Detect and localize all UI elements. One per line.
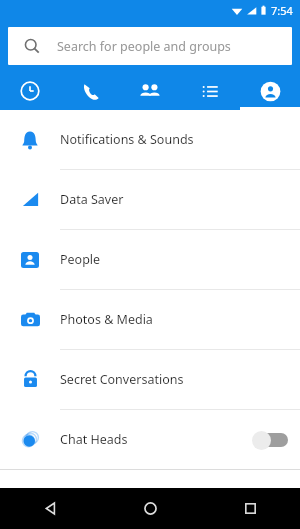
- button[interactable]: Photos & Media: [0, 290, 300, 349]
- button[interactable]: Notifications & Sounds: [0, 110, 300, 169]
- staticText: Search for people and groups: [57, 38, 231, 55]
- staticText: Chat Heads: [60, 431, 128, 448]
- staticText: Notifications & Sounds: [60, 131, 194, 148]
- button[interactable]: Recent: [0, 72, 60, 110]
- staticText: Data Saver: [60, 191, 124, 208]
- staticText: Photos & Media: [60, 311, 153, 328]
- staticText: 7:54: [271, 3, 293, 18]
- button[interactable]: Chat Heads: [0, 410, 300, 469]
- button[interactable]: Search for people and groups: [8, 27, 292, 65]
- button[interactable]: People: [0, 230, 300, 289]
- staticText: Secret Conversations: [60, 371, 184, 388]
- button[interactable]: Profile: [240, 72, 300, 110]
- button[interactable]: Calls: [60, 72, 120, 110]
- staticText: People: [60, 251, 101, 268]
- button[interactable]: Recents: [200, 488, 300, 529]
- button[interactable]: Home: [100, 488, 200, 529]
- button[interactable]: Chat Heads toggle: [252, 430, 288, 450]
- button[interactable]: Secret Conversations: [0, 350, 300, 409]
- button[interactable]: List: [180, 72, 240, 110]
- button[interactable]: Back: [0, 488, 100, 529]
- button[interactable]: Data Saver: [0, 170, 300, 229]
- button[interactable]: Groups: [120, 72, 180, 110]
